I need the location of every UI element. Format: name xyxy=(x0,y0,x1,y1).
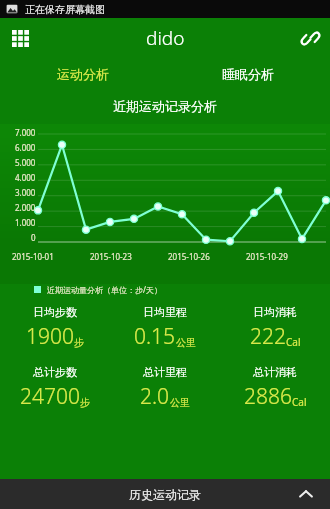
staticText: 5.000 xyxy=(15,157,36,168)
staticText: Cal xyxy=(286,335,301,349)
staticText: 步 xyxy=(80,396,90,409)
staticText: 公里 xyxy=(176,336,196,349)
staticText: 2015-10-01 xyxy=(12,251,54,262)
staticText: Cal xyxy=(292,395,307,409)
staticText: 日均消耗 xyxy=(253,305,297,319)
staticText: 6.000 xyxy=(15,142,36,153)
staticText: 24700 xyxy=(20,382,80,411)
staticText: 1900 xyxy=(26,322,74,351)
staticText: 0.15 xyxy=(134,322,176,351)
button[interactable]: Menu grid xyxy=(0,18,40,58)
staticText: 2015-10-26 xyxy=(168,251,210,262)
staticText: 历史运动记录 xyxy=(129,487,201,502)
staticText: 4.000 xyxy=(15,172,36,183)
staticText: 2886 xyxy=(244,382,292,411)
staticText: 日均步数 xyxy=(33,305,77,319)
button[interactable]: 历史运动记录 xyxy=(0,479,330,509)
button[interactable]: Link device xyxy=(290,18,330,58)
staticText: 1.000 xyxy=(15,217,36,228)
staticText: 公里 xyxy=(170,396,190,409)
staticText: 总计消耗 xyxy=(253,365,297,379)
staticText: 0 xyxy=(31,232,36,243)
staticText: 近期运动量分析（单位：步/天） xyxy=(47,284,162,295)
staticText: 日均里程 xyxy=(143,305,187,319)
staticText: 睡眠分析 xyxy=(222,66,274,82)
other: Expand history xyxy=(296,484,316,504)
staticText: 2015-10-29 xyxy=(246,251,288,262)
staticText: 2015-10-23 xyxy=(90,251,132,262)
staticText: 正在保存屏幕截图 xyxy=(25,3,105,16)
staticText: 总计里程 xyxy=(143,365,187,379)
staticText: 7.000 xyxy=(15,127,36,138)
button[interactable]: 运动分析 xyxy=(0,58,165,90)
staticText: 步 xyxy=(74,336,84,349)
staticText: 总计步数 xyxy=(33,365,77,379)
staticText: 近期运动记录分析 xyxy=(0,98,330,114)
button[interactable]: 睡眠分析 xyxy=(165,58,330,90)
staticText: 2.000 xyxy=(15,202,36,213)
staticText: 运动分析 xyxy=(57,66,109,82)
staticText: 2.0 xyxy=(140,382,170,411)
staticText: 3.000 xyxy=(15,187,36,198)
staticText: dido xyxy=(146,25,185,51)
staticText: 222 xyxy=(250,322,286,351)
